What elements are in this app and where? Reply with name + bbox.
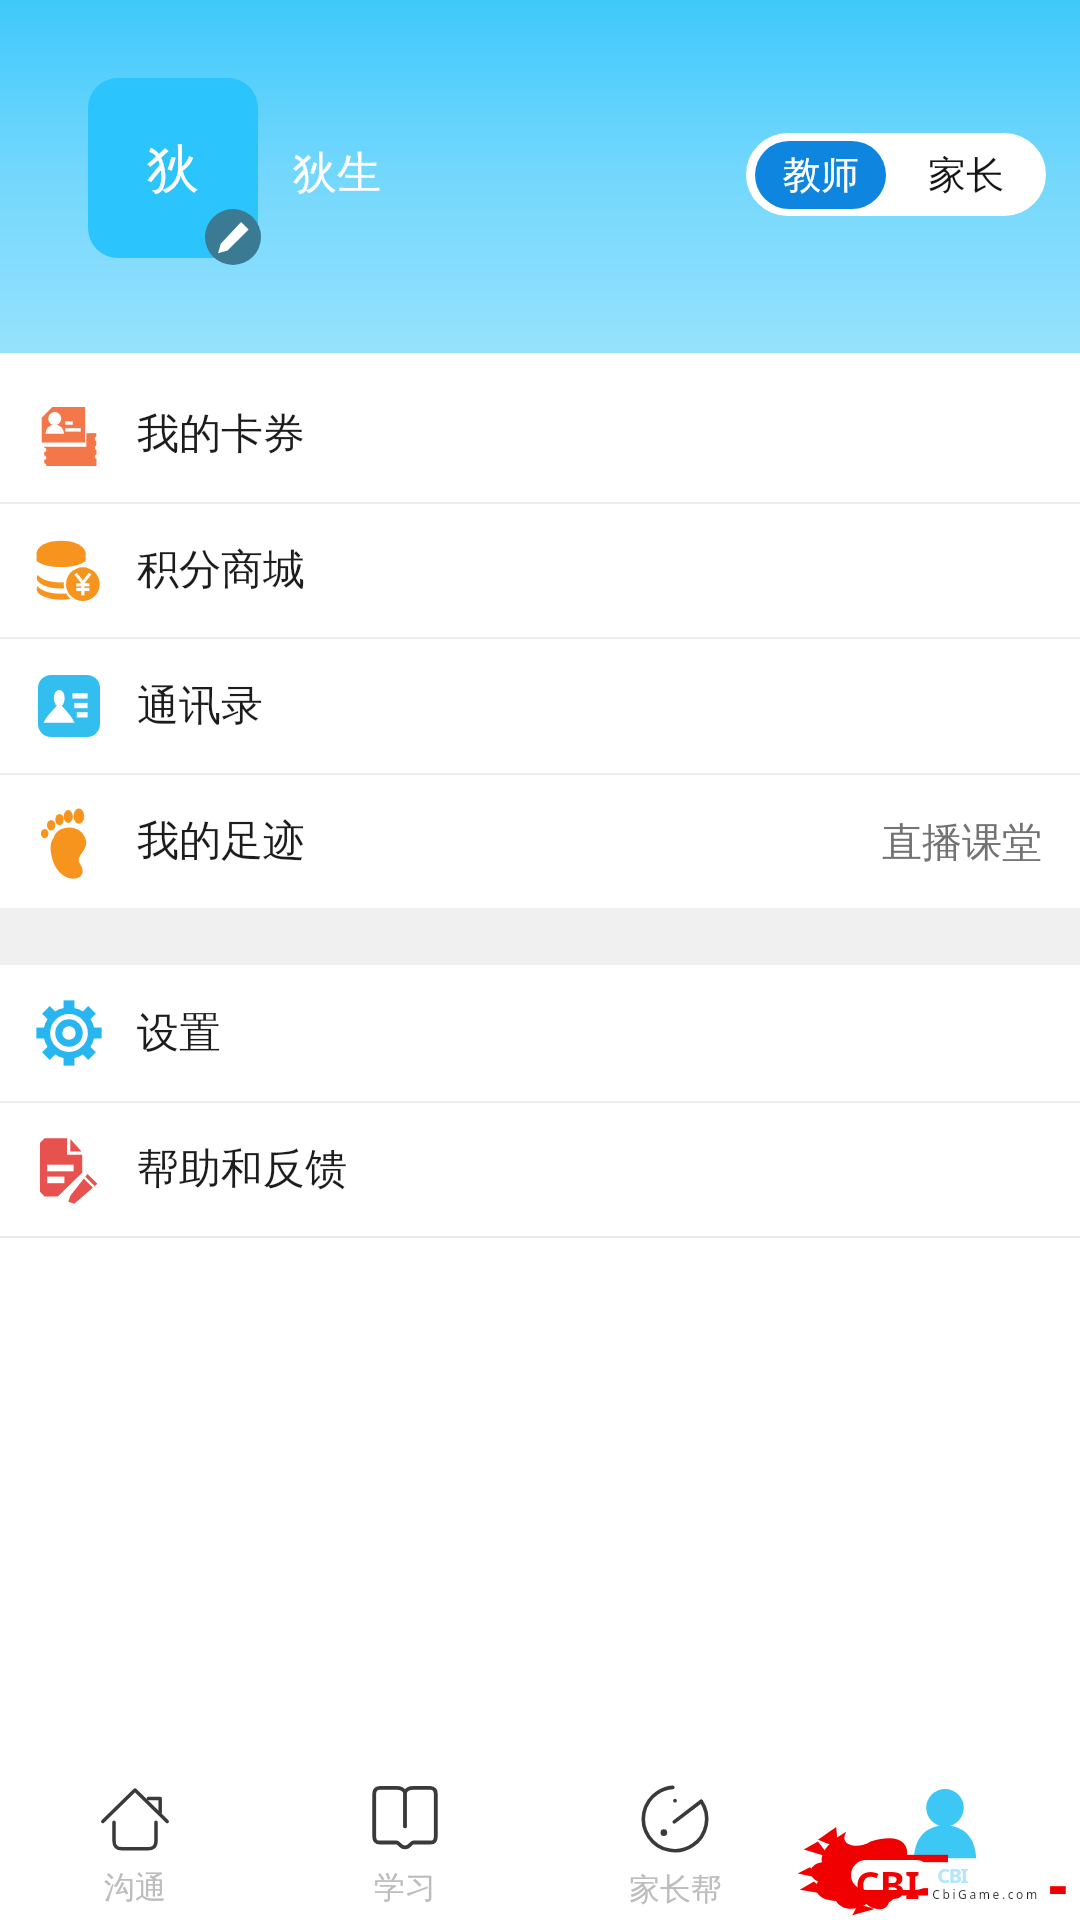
staticText: 我的卡券 bbox=[137, 408, 305, 461]
staticText: 我的足迹 bbox=[137, 815, 305, 868]
staticText: 通讯录 bbox=[137, 680, 263, 733]
staticText: 学习 bbox=[374, 1868, 436, 1907]
button[interactable]: 我 (Profile tab) bbox=[810, 1750, 1080, 1920]
staticText: 家长帮 bbox=[629, 1870, 722, 1909]
button[interactable]: 我的足迹 bbox=[0, 775, 1080, 908]
staticText: 教师 bbox=[783, 151, 859, 199]
button[interactable]: 家长 bbox=[886, 133, 1046, 216]
staticText: 帮助和反馈 bbox=[137, 1143, 347, 1196]
staticText: CBI bbox=[855, 1858, 920, 1910]
button[interactable]: 积分商城 bbox=[0, 504, 1080, 637]
staticText: 沟通 bbox=[104, 1868, 166, 1907]
staticText: 家长 bbox=[928, 151, 1004, 199]
button[interactable]: 我的卡券 bbox=[0, 367, 1080, 502]
staticText: 设置 bbox=[137, 1007, 221, 1060]
button[interactable]: Edit avatar bbox=[205, 209, 261, 265]
button[interactable]: 设置 bbox=[0, 965, 1080, 1101]
button[interactable]: 家长帮 bbox=[540, 1750, 810, 1920]
staticText: CBI bbox=[937, 1862, 967, 1889]
button[interactable]: 教师 bbox=[755, 141, 886, 209]
staticText: 狄生 bbox=[293, 146, 381, 201]
button[interactable]: 沟通 bbox=[0, 1750, 270, 1920]
staticText: 积分商城 bbox=[137, 544, 305, 597]
staticText: 狄 bbox=[147, 137, 199, 203]
staticText: 直播课堂 bbox=[882, 817, 1042, 867]
button[interactable]: Profile avatar bbox=[88, 78, 258, 258]
button[interactable]: 帮助和反馈 bbox=[0, 1103, 1080, 1236]
staticText: CbiGame.com bbox=[932, 1886, 1040, 1902]
button[interactable]: 通讯录 bbox=[0, 639, 1080, 773]
button[interactable]: 学习 bbox=[270, 1750, 540, 1920]
